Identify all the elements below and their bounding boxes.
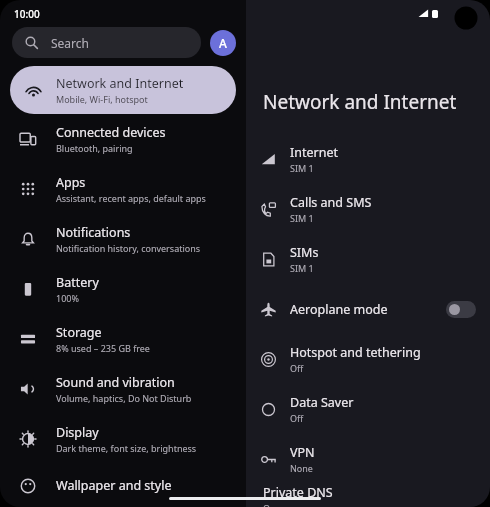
staticText: Display (56, 424, 99, 441)
staticText: Search (51, 35, 89, 51)
staticText: Assistant, recent apps, default apps (56, 192, 206, 204)
button[interactable]: Connected devices (0, 114, 246, 164)
button[interactable]: Aeroplane mode toggle (446, 301, 476, 318)
button[interactable]: VPN (246, 434, 490, 484)
button[interactable]: Display (0, 414, 246, 464)
button[interactable]: Battery (0, 264, 246, 314)
button[interactable]: Data Saver (246, 384, 490, 434)
staticText: Network and Internet (263, 89, 457, 115)
staticText: Storage (56, 324, 102, 341)
staticText: Hotspot and tethering (290, 344, 421, 361)
staticText: SIMs (290, 244, 319, 261)
staticText: Internet (290, 144, 338, 161)
button[interactable]: Search (12, 27, 201, 58)
button[interactable]: Wallpaper and style (0, 464, 246, 507)
staticText: Aeroplane mode (290, 301, 388, 318)
staticText: VPN (290, 444, 315, 461)
button[interactable]: SIMs (246, 234, 490, 284)
button[interactable]: Account (210, 30, 236, 56)
staticText: 100% (56, 292, 79, 304)
staticText: A (219, 35, 227, 51)
staticText: Data Saver (290, 394, 354, 411)
staticText: Notifications (56, 224, 131, 241)
staticText: Bluetooth, pairing (56, 142, 133, 154)
staticText: Sound and vibration (56, 374, 175, 391)
staticText: Notification history, conversations (56, 242, 201, 254)
staticText: None (290, 462, 313, 474)
staticText: Off (290, 362, 304, 374)
button[interactable]: Hotspot and tethering (246, 334, 490, 384)
staticText: On (263, 502, 276, 507)
staticText: Network and Internet (56, 75, 184, 92)
button[interactable]: Storage (0, 314, 246, 364)
staticText: SIM 1 (290, 262, 314, 274)
button[interactable]: Network and Internet (10, 66, 236, 114)
button[interactable]: Calls and SMS (246, 184, 490, 234)
staticText: Calls and SMS (290, 194, 372, 211)
button[interactable]: Internet (246, 134, 490, 184)
staticText: SIM 1 (290, 212, 314, 224)
button[interactable]: Aeroplane mode (246, 284, 490, 334)
staticText: Private DNS (263, 484, 333, 501)
staticText: Dark theme, font size, brightness (56, 442, 197, 454)
button[interactable]: Sound and vibration (0, 364, 246, 414)
staticText: Apps (56, 174, 86, 191)
button[interactable]: Apps (0, 164, 246, 214)
staticText: Battery (56, 274, 99, 291)
staticText: Mobile, Wi-Fi, hotspot (56, 93, 148, 105)
staticText: Volume, haptics, Do Not Disturb (56, 392, 192, 404)
button[interactable]: Notifications (0, 214, 246, 264)
staticText: Off (290, 412, 304, 424)
staticText: Connected devices (56, 124, 166, 141)
staticText: Wallpaper and style (56, 477, 172, 494)
staticText: 10:00 (14, 7, 40, 21)
button[interactable]: Private DNS (246, 484, 490, 507)
staticText: SIM 1 (290, 162, 314, 174)
staticText: 8% used – 235 GB free (56, 342, 150, 354)
